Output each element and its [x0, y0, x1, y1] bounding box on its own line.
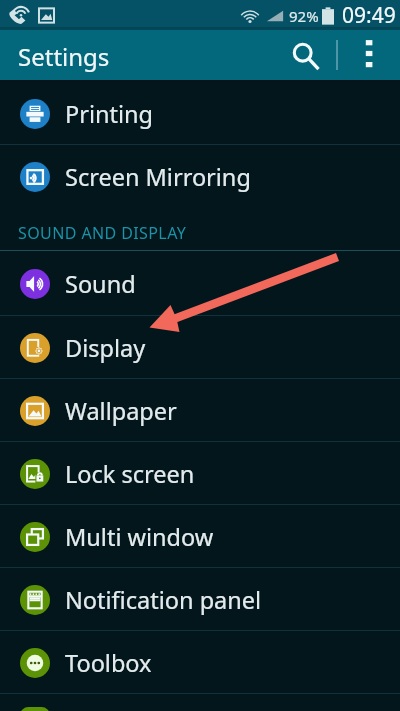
staticText: Screen Mirroring — [65, 161, 251, 193]
button[interactable]: Lock screen — [0, 442, 400, 505]
button[interactable]: Printing — [0, 82, 400, 145]
staticText: Wallpaper — [65, 395, 177, 427]
button[interactable]: Search — [280, 32, 326, 78]
staticText: Printing — [65, 98, 154, 130]
button[interactable]: Toolbox — [0, 631, 400, 694]
staticText: Lock screen — [65, 458, 195, 490]
staticText: 92% — [289, 6, 319, 26]
staticText: Toolbox — [65, 647, 152, 679]
staticText: SOUND AND DISPLAY — [18, 222, 187, 244]
staticText: Sound — [65, 268, 136, 300]
staticText: Display — [65, 332, 146, 364]
button[interactable]: More options — [348, 34, 390, 76]
button[interactable]: Display — [0, 316, 400, 379]
button[interactable]: Notification panel — [0, 568, 400, 631]
staticText: Notification panel — [65, 584, 262, 616]
button[interactable]: Wallpaper — [0, 379, 400, 442]
button[interactable]: Multi window — [0, 505, 400, 568]
staticText: Settings — [18, 40, 110, 73]
button[interactable]: Sound — [0, 251, 400, 316]
staticText: 09:49 — [342, 1, 396, 30]
staticText: Multi window — [65, 521, 214, 553]
button[interactable]: Screen Mirroring — [0, 145, 400, 208]
